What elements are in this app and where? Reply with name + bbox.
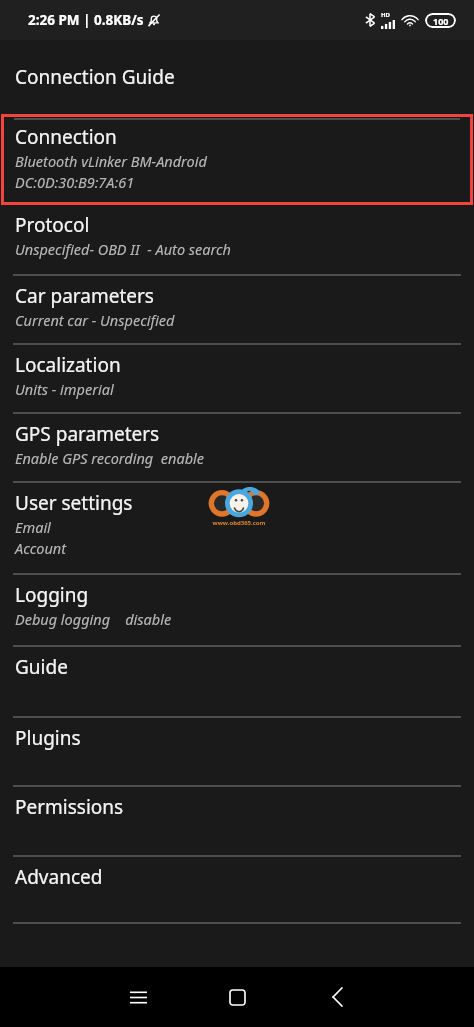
staticText: Permissions bbox=[15, 794, 124, 820]
staticText: Account bbox=[15, 538, 67, 558]
staticText: Protocol bbox=[15, 212, 90, 238]
button[interactable]: Protocol bbox=[0, 205, 474, 274]
staticText: Unspecified- OBD II - Auto search bbox=[15, 239, 232, 259]
button[interactable]: Back bbox=[303, 967, 371, 1027]
button[interactable]: Car parameters bbox=[0, 276, 474, 343]
staticText: GPS parameters bbox=[15, 421, 160, 447]
staticText: Logging bbox=[15, 582, 89, 608]
staticText: DC:0D:30:B9:7A:61 bbox=[15, 172, 135, 192]
button[interactable]: Localization bbox=[0, 345, 474, 412]
staticText: Localization bbox=[15, 352, 121, 378]
staticText: Units - imperial bbox=[15, 379, 114, 399]
button[interactable]: Advanced bbox=[0, 857, 474, 922]
staticText: HD bbox=[381, 11, 390, 19]
button[interactable]: Logging bbox=[0, 575, 474, 645]
staticText: Car parameters bbox=[15, 283, 154, 309]
staticText: Enable GPS recording enable bbox=[15, 448, 205, 468]
button[interactable]: Recent apps bbox=[104, 967, 172, 1027]
staticText: 2:26 PM | 0.8KB/s bbox=[28, 11, 144, 29]
staticText: Advanced bbox=[15, 864, 103, 890]
button[interactable]: Permissions bbox=[0, 787, 474, 855]
staticText: Debug logging disable bbox=[15, 609, 172, 629]
staticText: Plugins bbox=[15, 725, 81, 751]
staticText: Bluetooth vLinker BM-Android bbox=[15, 151, 207, 171]
staticText: Guide bbox=[15, 654, 68, 680]
staticText: 100 bbox=[433, 15, 449, 27]
button[interactable]: GPS parameters bbox=[0, 414, 474, 481]
button[interactable]: Plugins bbox=[0, 718, 474, 785]
button[interactable]: Connection bbox=[1, 114, 473, 205]
staticText: www.obd365.com bbox=[208, 519, 270, 527]
staticText: User settings bbox=[15, 490, 133, 516]
staticText: Email bbox=[15, 517, 51, 537]
button[interactable]: Home bbox=[203, 967, 271, 1027]
button[interactable]: Guide bbox=[0, 647, 474, 716]
staticText: Current car - Unspecified bbox=[15, 310, 175, 330]
staticText: Connection bbox=[15, 124, 117, 150]
staticText: Connection Guide bbox=[15, 64, 175, 90]
button[interactable]: User settings bbox=[0, 483, 474, 573]
